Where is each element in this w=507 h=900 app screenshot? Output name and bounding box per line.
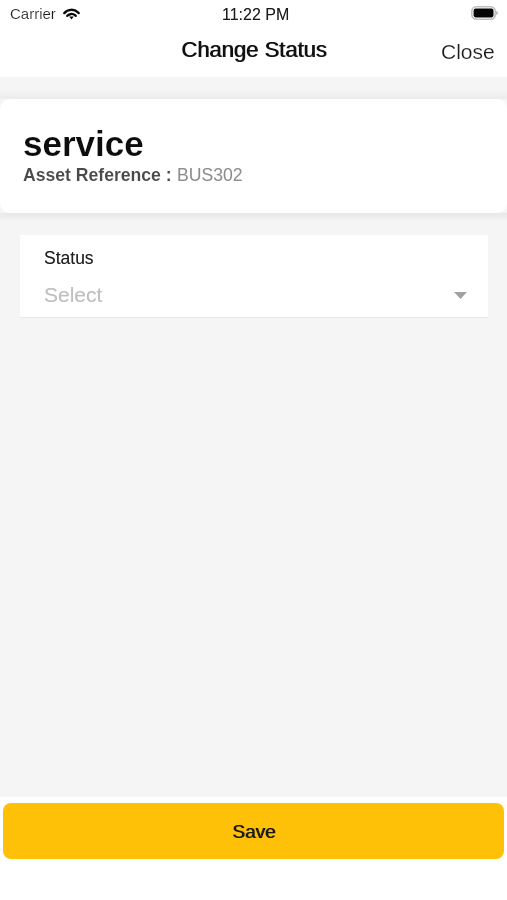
staticText: BUS302 [177, 165, 243, 185]
other: Open status list [454, 292, 467, 299]
button[interactable]: Status [20, 235, 488, 318]
staticText: Asset Reference : [23, 165, 177, 185]
button[interactable]: Save [3, 803, 504, 859]
staticText: Save [232, 821, 276, 842]
other: Wi-Fi [60, 4, 83, 20]
staticText: Save [233, 821, 277, 842]
staticText: Change Status [182, 37, 328, 62]
staticText: 11:22 PM [222, 6, 290, 24]
staticText: Change Status [181, 37, 327, 62]
staticText: Status [44, 248, 94, 268]
staticText: Carrier [10, 5, 56, 22]
staticText: Select [44, 283, 103, 306]
staticText: Close [441, 40, 495, 63]
button[interactable]: Close [435, 36, 501, 67]
staticText: 11:22 PM [222, 6, 290, 24]
staticText: Status [44, 248, 94, 268]
other: Battery full [471, 6, 497, 20]
staticText: service [23, 124, 144, 163]
